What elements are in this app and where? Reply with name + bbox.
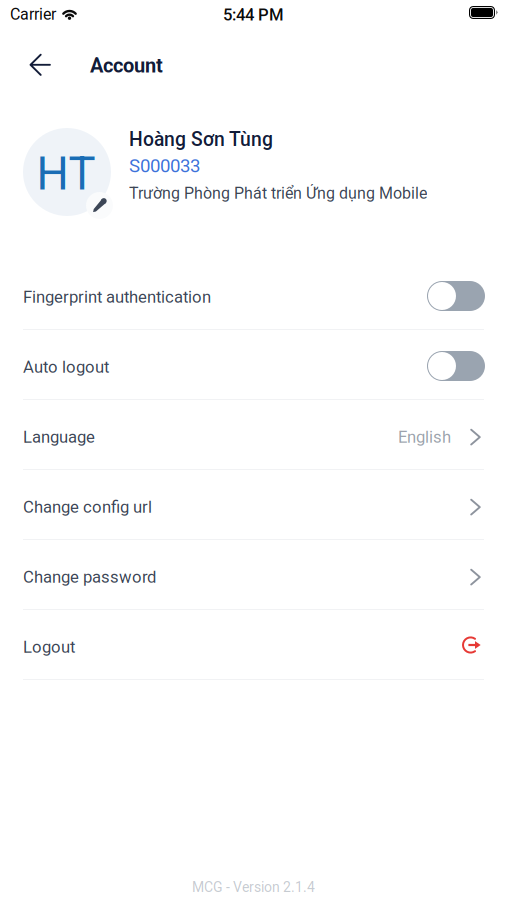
button[interactable]: Auto logout xyxy=(0,330,507,400)
staticText: HT xyxy=(36,147,95,200)
button[interactable]: Fingerprint authentication xyxy=(0,260,507,330)
staticText: Language xyxy=(23,427,95,447)
staticText: Change password xyxy=(23,567,156,587)
staticText: 5:44 PM xyxy=(223,5,284,24)
staticText: S000033 xyxy=(129,155,200,177)
button[interactable]: Logout xyxy=(0,610,507,680)
staticText: Carrier xyxy=(10,5,56,24)
staticText: Logout xyxy=(23,637,75,657)
staticText: MCG - Version 2.1.4 xyxy=(192,879,315,895)
staticText: Hoàng Sơn Tùng xyxy=(129,128,273,151)
button[interactable]: Change password xyxy=(0,540,507,610)
staticText: Trường Phòng Phát triển Ứng dụng Mobile xyxy=(129,184,427,203)
staticText: English xyxy=(398,427,451,447)
button[interactable]: Back xyxy=(18,43,62,87)
staticText: Change config url xyxy=(23,497,152,517)
button[interactable]: Language xyxy=(0,400,507,470)
staticText: Auto logout xyxy=(23,357,109,377)
staticText: Fingerprint authentication xyxy=(23,287,211,307)
button[interactable]: Change config url xyxy=(0,470,507,540)
staticText: Account xyxy=(90,54,163,77)
